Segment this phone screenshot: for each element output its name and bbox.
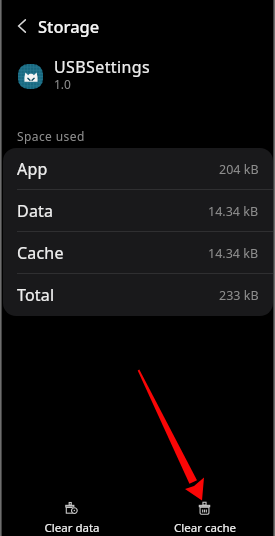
staticText: Clear cache (174, 520, 236, 536)
button[interactable]: App (3, 148, 273, 190)
button[interactable]: Cache (3, 232, 273, 274)
button[interactable]: Total (3, 274, 273, 316)
button[interactable]: Clear cache (173, 502, 236, 536)
staticText: Clear data (44, 520, 100, 536)
staticText: App (17, 158, 48, 180)
button[interactable]: Clear data (41, 502, 102, 536)
staticText: 233 kB (219, 287, 259, 304)
staticText: 14.34 kB (208, 245, 259, 262)
staticText: 204 kB (219, 161, 259, 178)
staticText: 1.0 (54, 76, 71, 92)
staticText: Storage (38, 15, 100, 37)
staticText: USBSettings (54, 56, 151, 78)
button[interactable]: Data (3, 190, 273, 232)
staticText: Data (17, 200, 54, 222)
staticText: 14.34 kB (208, 203, 259, 220)
staticText: Space used (17, 128, 85, 144)
staticText: Cache (17, 242, 64, 264)
staticText: Total (17, 284, 55, 306)
button[interactable]: Back (11, 15, 33, 37)
